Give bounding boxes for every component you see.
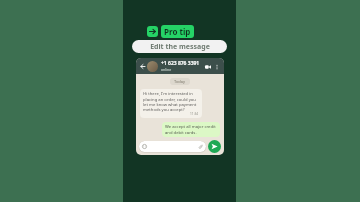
button[interactable] xyxy=(139,141,206,152)
staticText: Hi there, I'm interested in placing an o… xyxy=(143,91,199,112)
staticText: 11:34 xyxy=(190,112,199,116)
button[interactable]: Video call xyxy=(203,62,212,71)
staticText: We accept all major credit and debit car… xyxy=(165,124,217,135)
button[interactable]: Next xyxy=(147,25,194,38)
staticText: +1 623 876 3391 xyxy=(161,60,200,67)
staticText: Pro tip xyxy=(164,26,191,37)
button[interactable]: Send xyxy=(208,140,221,153)
button[interactable]: More options xyxy=(212,62,221,71)
staticText: Today xyxy=(174,79,186,84)
staticText: Edit the message xyxy=(150,42,210,52)
other: Next xyxy=(147,26,158,37)
staticText: online xyxy=(161,67,172,72)
button[interactable]: We accept all major credit and debit car… xyxy=(165,124,217,135)
button[interactable]: Back xyxy=(139,63,146,70)
button[interactable]: Edit the message xyxy=(132,40,227,53)
button[interactable]: Hi there, I'm interested in placing an o… xyxy=(143,91,199,116)
